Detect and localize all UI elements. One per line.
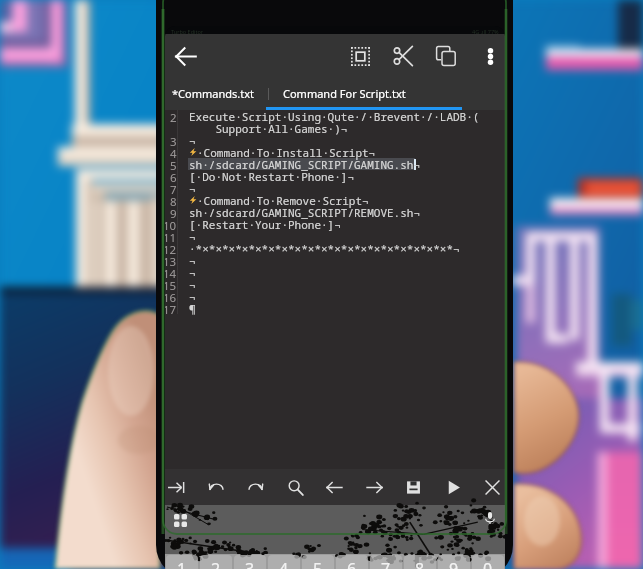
staticText: 3	[170, 134, 177, 146]
staticText: ¬	[189, 277, 196, 292]
button[interactable]: More options	[472, 38, 505, 74]
staticText: ·Command·To·Remove·Script¬	[197, 193, 369, 208]
staticText: 6	[347, 558, 357, 569]
staticText: ¬	[189, 229, 196, 244]
staticText: Command For Script.txt	[283, 86, 406, 101]
staticText: 14	[165, 266, 177, 278]
button[interactable]: Cut	[385, 38, 421, 74]
button[interactable]: Copy	[428, 38, 464, 74]
staticText: ¬	[189, 265, 196, 280]
button[interactable]: Previous	[318, 471, 350, 503]
staticText: ¶	[189, 301, 196, 316]
button[interactable]: Select all	[342, 38, 378, 74]
staticText: Execute·Script·Using·Qute·/·Brevent·/·LA…	[189, 109, 480, 124]
staticText: 4G .ıll 77%	[472, 28, 499, 35]
staticText: 4	[170, 146, 177, 158]
staticText: 0	[483, 558, 493, 569]
staticText: 9	[170, 206, 177, 218]
button[interactable]: Voice input	[481, 509, 499, 527]
staticText: [·Restart·Your·Phone·]¬	[189, 217, 341, 232]
button[interactable]: 4	[268, 555, 300, 569]
staticText: sh·/sdcard/GAMING_SCRIPT/REMOVE.sh¬	[189, 205, 420, 220]
button[interactable]: Indent	[165, 471, 192, 503]
staticText: ¬	[189, 253, 196, 268]
button[interactable]: Next	[358, 471, 390, 503]
button[interactable]: 1	[166, 555, 198, 569]
staticText: ¬	[189, 181, 196, 196]
button[interactable]: Close	[476, 471, 505, 503]
staticText: 7	[381, 558, 391, 569]
staticText: 1	[177, 558, 187, 569]
staticText: 2	[170, 110, 177, 122]
button[interactable]: 9	[438, 555, 470, 569]
staticText: 8	[170, 194, 177, 206]
button[interactable]: 5	[302, 555, 334, 569]
staticText: sh·/sdcard/GAMING_SCRIPT/GAMING.sh¬	[189, 157, 420, 172]
staticText: 2	[211, 558, 221, 569]
staticText: 8	[415, 558, 425, 569]
staticText: ¬	[189, 133, 196, 148]
staticText: ¬	[189, 289, 196, 304]
staticText: 5	[170, 158, 177, 170]
staticText: 9	[449, 558, 459, 569]
button[interactable]: 7	[370, 555, 402, 569]
button[interactable]: *Commands.txt	[172, 86, 254, 101]
staticText: 13	[165, 254, 177, 266]
button[interactable]: 6	[336, 555, 368, 569]
button[interactable]: 0	[472, 555, 504, 569]
button[interactable]: Search	[279, 471, 311, 503]
button[interactable]: 3	[234, 555, 266, 569]
staticText: 3	[245, 558, 255, 569]
staticText: ·Command·To·Install·Script¬	[197, 145, 376, 160]
staticText: 15	[165, 278, 177, 290]
staticText: 7	[170, 182, 177, 194]
staticText: Support·All·Games·)¬	[189, 121, 348, 136]
staticText: 4	[279, 558, 289, 569]
staticText: 10	[165, 218, 177, 230]
button[interactable]: Command For Script.txt	[283, 86, 406, 101]
button[interactable]: Run	[437, 471, 469, 503]
staticText: *Commands.txt	[172, 86, 254, 101]
button[interactable]: Back	[167, 38, 203, 74]
staticText: 11	[165, 230, 177, 242]
staticText: 16	[165, 290, 177, 302]
staticText: 12	[165, 242, 177, 254]
button[interactable]: Save	[397, 471, 429, 503]
staticText: 17	[165, 302, 177, 314]
button[interactable]: Redo	[239, 471, 271, 503]
button[interactable]: Undo	[200, 471, 232, 503]
staticText: ·*×*×*×*×*×*×*×*×*×*×*×*×*×*×*×*×*×*×*×*…	[189, 241, 460, 256]
button[interactable]: 8	[404, 555, 436, 569]
button[interactable]: 2	[200, 555, 232, 569]
staticText: 5	[313, 558, 323, 569]
staticText: 6	[170, 170, 177, 182]
staticText: [·Do·Not·Restart·Phone·]¬	[189, 169, 354, 184]
staticText: Turbo Editor	[171, 28, 204, 35]
button[interactable]: Keyboard options	[171, 511, 189, 529]
